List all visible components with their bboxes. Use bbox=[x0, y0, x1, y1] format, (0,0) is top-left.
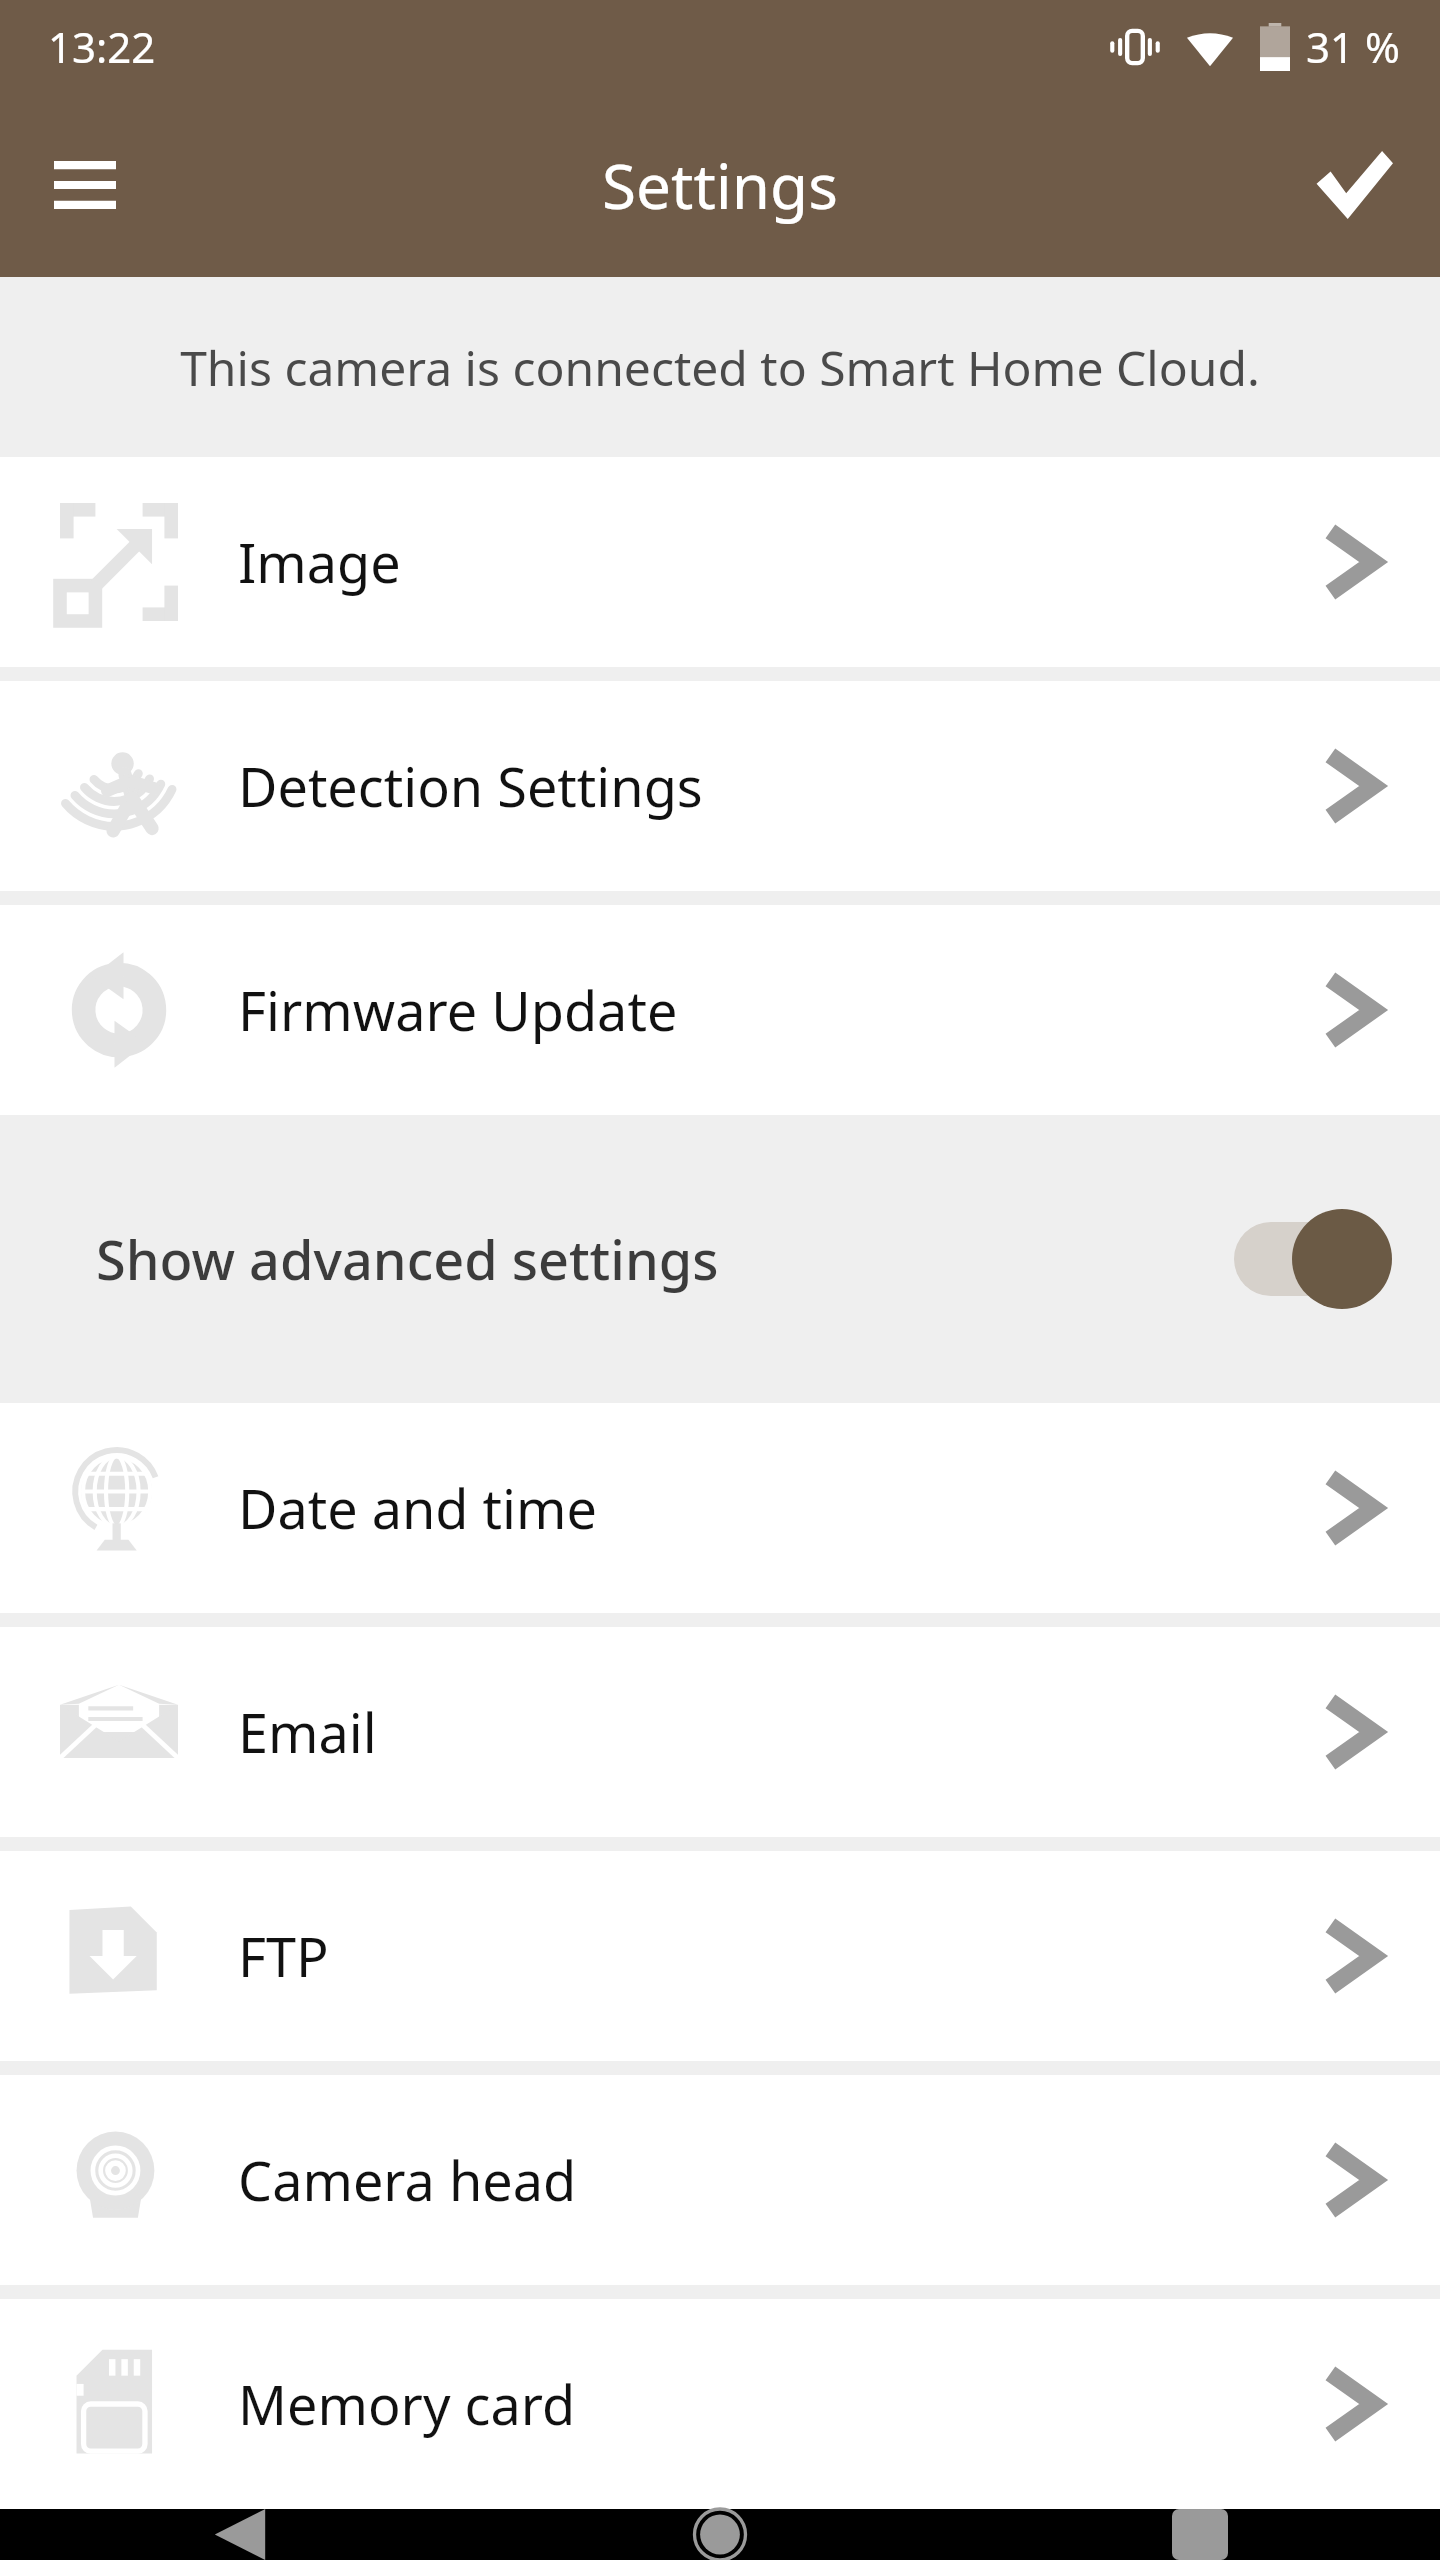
button[interactable]: Date and time bbox=[0, 1403, 1440, 1613]
staticText: This camera is connected to Smart Home C… bbox=[180, 335, 1260, 400]
button[interactable]: Firmware Update bbox=[0, 905, 1440, 1115]
button[interactable]: FTP bbox=[0, 1851, 1440, 2061]
staticText: 13:22 bbox=[48, 18, 156, 75]
button[interactable]: Open navigation menu bbox=[30, 130, 140, 240]
staticText: Email bbox=[238, 1695, 377, 1769]
staticText: Camera head bbox=[238, 2143, 577, 2217]
button[interactable]: Back bbox=[0, 2509, 480, 2560]
button[interactable]: Memory card bbox=[0, 2299, 1440, 2509]
button[interactable]: Recent apps bbox=[960, 2509, 1440, 2560]
staticText: Detection Settings bbox=[238, 749, 703, 823]
button[interactable]: Image bbox=[0, 457, 1440, 667]
staticText: Show advanced settings bbox=[96, 1222, 719, 1296]
staticText: 31 % bbox=[1306, 18, 1400, 75]
button[interactable]: Show advanced settings bbox=[0, 1115, 1440, 1403]
button[interactable]: Detection Settings bbox=[0, 681, 1440, 891]
staticText: Firmware Update bbox=[238, 973, 678, 1047]
button[interactable]: Home bbox=[480, 2509, 960, 2560]
staticText: Image bbox=[238, 525, 401, 599]
button[interactable]: Email bbox=[0, 1627, 1440, 1837]
staticText: Settings bbox=[602, 143, 838, 227]
staticText: Date and time bbox=[238, 1471, 597, 1545]
button[interactable]: Confirm bbox=[1294, 125, 1414, 245]
button[interactable]: Camera head bbox=[0, 2075, 1440, 2285]
staticText: Memory card bbox=[238, 2367, 576, 2441]
staticText: FTP bbox=[238, 1919, 329, 1993]
